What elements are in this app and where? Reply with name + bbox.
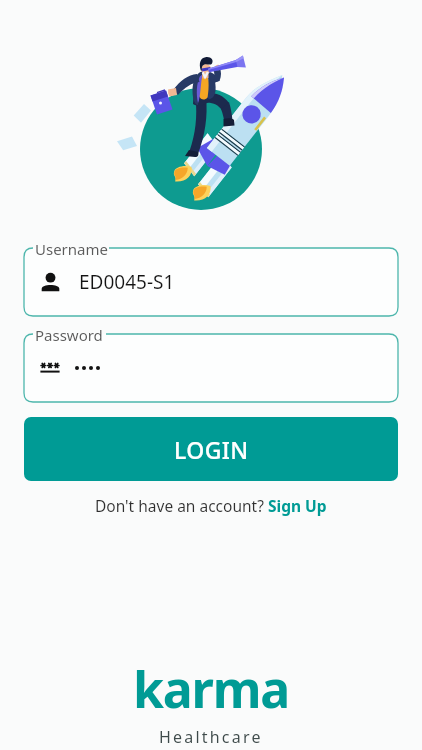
button[interactable]: LOGIN xyxy=(24,417,398,481)
button[interactable]: Sign Up xyxy=(268,495,327,516)
staticText: Healthcare xyxy=(159,726,263,748)
button[interactable]: Username xyxy=(24,239,398,316)
staticText: Password xyxy=(35,325,103,345)
staticText: LOGIN xyxy=(174,434,249,465)
staticText: Sign Up xyxy=(268,495,327,516)
staticText: Don't have an account? xyxy=(95,495,268,516)
other: Rocket illustration xyxy=(0,0,422,236)
button[interactable]: Password xyxy=(24,325,398,402)
staticText: ED0045-S1 xyxy=(79,269,175,295)
staticText: Username xyxy=(35,239,108,259)
staticText: karma xyxy=(133,655,289,723)
